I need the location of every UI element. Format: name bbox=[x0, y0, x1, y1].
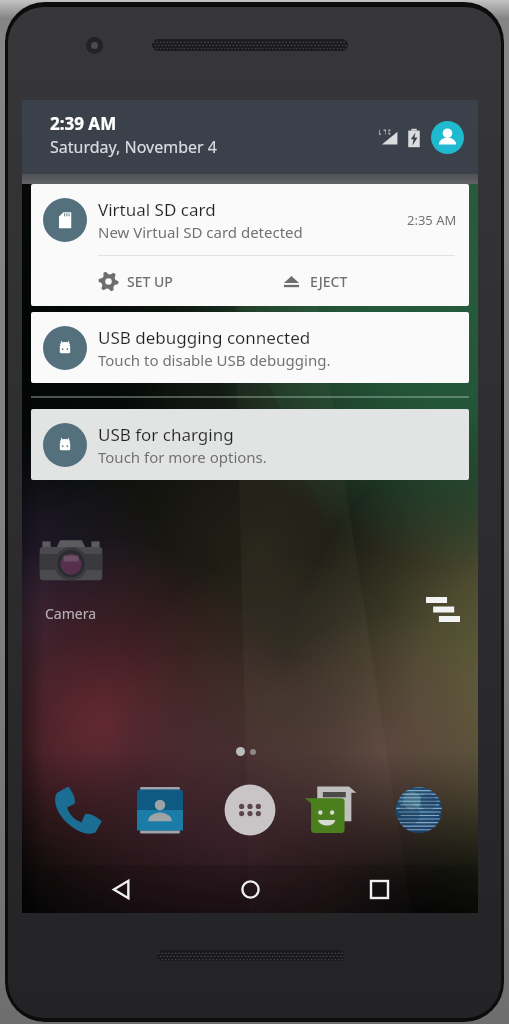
staticText: New Virtual SD card detected bbox=[98, 222, 303, 242]
staticText: USB debugging connected bbox=[98, 326, 311, 349]
staticText: USB for charging bbox=[98, 423, 234, 446]
staticText: SET UP bbox=[127, 272, 173, 291]
button[interactable]: Widget bbox=[426, 597, 460, 623]
staticText: Camera bbox=[45, 604, 97, 623]
staticText: EJECT bbox=[310, 272, 348, 291]
button[interactable]: SET UP bbox=[98, 256, 258, 306]
staticText: Saturday, November 4 bbox=[50, 136, 217, 158]
staticText: Touch to disable USB debugging. bbox=[98, 350, 331, 370]
button[interactable]: Phone bbox=[45, 778, 109, 842]
button[interactable]: Camera bbox=[26, 530, 116, 623]
button[interactable]: USB debugging connected bbox=[31, 312, 469, 383]
staticText: 2:39 AM bbox=[50, 112, 117, 135]
button[interactable]: Virtual SD card bbox=[31, 184, 469, 306]
staticText: Virtual SD card bbox=[98, 198, 216, 221]
button[interactable]: Home bbox=[220, 865, 280, 913]
button[interactable]: User profile bbox=[431, 121, 464, 154]
staticText: 2:35 AM bbox=[407, 211, 457, 229]
button[interactable]: Back bbox=[91, 865, 151, 913]
button[interactable]: Recent apps bbox=[349, 865, 409, 913]
staticText: Touch for more options. bbox=[98, 447, 267, 467]
button[interactable]: Apps bbox=[218, 778, 282, 842]
button[interactable]: Messaging bbox=[302, 778, 366, 842]
button[interactable]: USB for charging bbox=[31, 409, 469, 480]
button[interactable]: EJECT bbox=[281, 256, 441, 306]
button[interactable]: Browser bbox=[387, 778, 451, 842]
button[interactable]: Contacts bbox=[128, 778, 192, 842]
